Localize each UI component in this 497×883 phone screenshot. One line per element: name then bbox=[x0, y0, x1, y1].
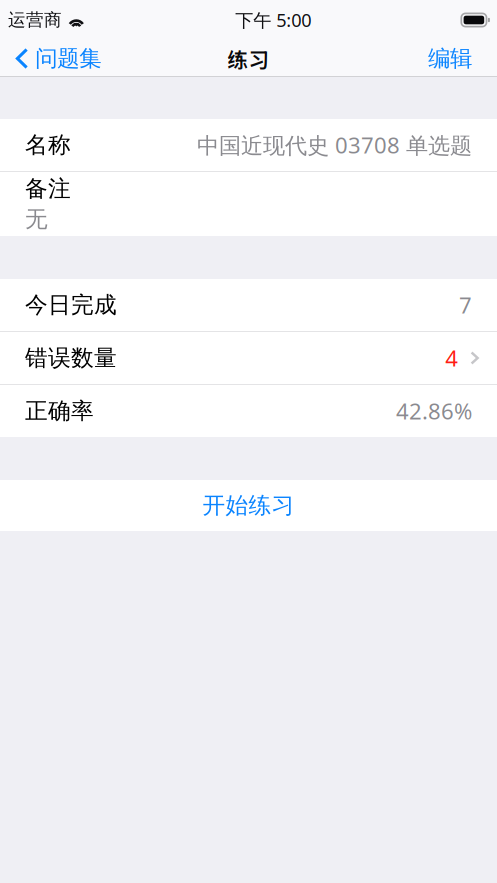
staticText: 无 bbox=[25, 205, 48, 234]
staticText: 开始练习 bbox=[202, 491, 294, 520]
staticText: 7 bbox=[459, 290, 472, 320]
staticText: 中国近现代史 03708 单选题 bbox=[197, 130, 472, 160]
button[interactable]: 备注 bbox=[0, 172, 497, 236]
staticText: 运营商 bbox=[8, 9, 62, 31]
staticText: 下午 5:00 bbox=[235, 8, 311, 32]
button[interactable]: 错误数量 bbox=[0, 332, 497, 384]
staticText: 4 bbox=[445, 343, 458, 373]
staticText: 编辑 bbox=[428, 44, 472, 73]
staticText: 今日完成 bbox=[25, 291, 117, 319]
button[interactable]: 正确率 bbox=[0, 385, 497, 437]
button[interactable]: 问题集 bbox=[0, 40, 111, 77]
staticText: 正确率 bbox=[25, 397, 94, 425]
staticText: 备注 bbox=[25, 174, 71, 203]
staticText: 练习 bbox=[227, 44, 269, 73]
button[interactable]: 今日完成 bbox=[0, 279, 497, 331]
button[interactable]: 编辑 bbox=[418, 40, 497, 77]
button[interactable]: 开始练习 bbox=[0, 480, 497, 531]
staticText: 问题集 bbox=[35, 44, 101, 73]
staticText: 错误数量 bbox=[25, 344, 117, 372]
button[interactable]: 名称 bbox=[0, 119, 497, 171]
staticText: 42.86% bbox=[396, 396, 472, 426]
staticText: 名称 bbox=[25, 131, 71, 159]
